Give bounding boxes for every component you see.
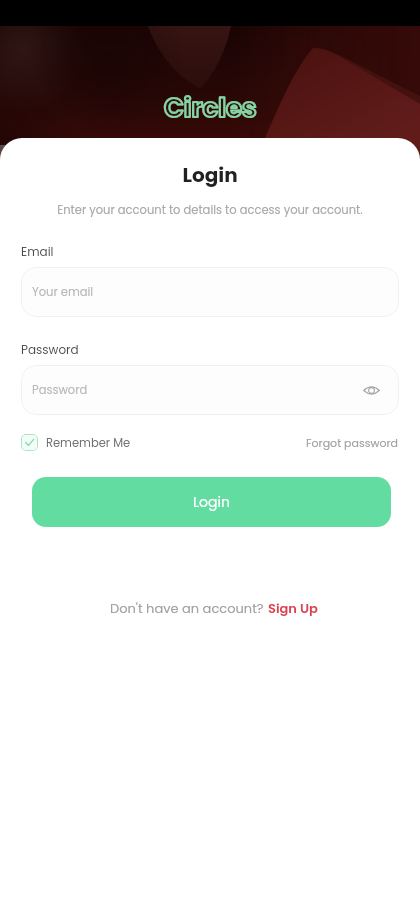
staticText: Remember Me (46, 435, 131, 451)
staticText: Password (32, 382, 88, 398)
button[interactable]: Sign Up (268, 599, 318, 617)
button[interactable]: Your email (21, 267, 399, 317)
button[interactable]: Show password (359, 378, 383, 402)
button[interactable]: Login (32, 477, 391, 527)
button[interactable]: Password (21, 365, 399, 415)
staticText: Login (193, 492, 230, 512)
staticText: Don't have an account? (110, 599, 268, 617)
staticText: Email (21, 243, 54, 260)
button[interactable]: Remember Me (21, 434, 131, 451)
staticText: Circles (164, 90, 257, 126)
staticText: Your email (32, 284, 94, 300)
staticText: Circles (164, 90, 257, 126)
button[interactable]: Forgot password (306, 435, 399, 450)
staticText: Login (0, 161, 420, 189)
staticText: Password (21, 341, 79, 358)
staticText: Enter your account to details to access … (0, 202, 420, 218)
